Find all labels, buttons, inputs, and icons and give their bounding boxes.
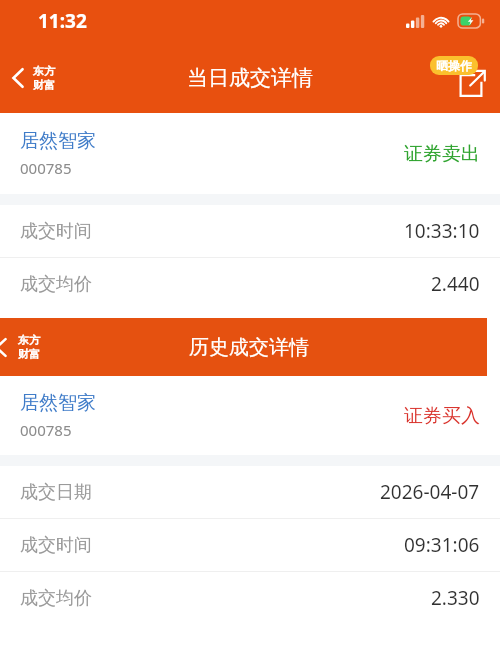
staticText: 居然智家: [20, 391, 96, 415]
staticText: 财富: [33, 78, 55, 92]
staticText: 000785: [20, 158, 72, 178]
staticText: 成交均价: [20, 587, 431, 610]
staticText: 成交时间: [20, 534, 404, 557]
button[interactable]: Back: [0, 58, 65, 98]
staticText: 历史成交详情: [189, 335, 309, 360]
staticText: 000785: [20, 420, 72, 440]
staticText: 当日成交详情: [187, 65, 313, 91]
staticText: 居然智家: [20, 129, 96, 153]
staticText: 成交均价: [20, 273, 431, 296]
button[interactable]: 成交均价: [0, 572, 500, 624]
staticText: 2026-04-07: [380, 479, 480, 505]
staticText: 10:33:10: [404, 218, 480, 244]
staticText: 成交时间: [20, 220, 404, 243]
button[interactable]: 居然智家: [0, 113, 500, 194]
staticText: 2.330: [431, 585, 480, 611]
button[interactable]: 居然智家: [0, 376, 500, 455]
staticText: 证券买入: [404, 404, 480, 428]
button[interactable]: 成交日期: [0, 466, 500, 518]
staticText: 2.440: [431, 271, 480, 297]
staticText: 证券卖出: [404, 142, 480, 166]
staticText: 晒操作: [436, 58, 472, 73]
staticText: 09:31:06: [404, 532, 480, 558]
button[interactable]: 成交均价: [0, 258, 500, 310]
staticText: 东方: [33, 64, 55, 78]
button[interactable]: 成交时间: [0, 519, 500, 571]
button[interactable]: 成交时间: [0, 205, 500, 257]
button[interactable]: Share: [430, 54, 486, 102]
staticText: 成交日期: [20, 481, 380, 504]
staticText: 财富: [18, 347, 40, 361]
button[interactable]: Back: [0, 327, 48, 367]
staticText: 11:32: [38, 8, 87, 34]
staticText: 东方: [18, 333, 40, 347]
